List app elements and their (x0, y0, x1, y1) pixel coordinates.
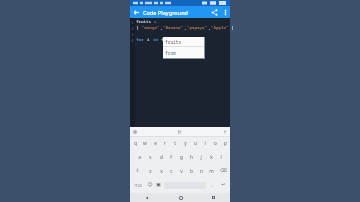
staticText: b (190, 168, 193, 175)
staticText: w (143, 140, 147, 147)
staticText: k (210, 154, 213, 161)
button[interactable]: m (206, 164, 216, 178)
button[interactable]: Back (130, 6, 142, 18)
staticText: 4 (131, 38, 134, 43)
button[interactable]: . (207, 178, 216, 192)
staticText: [ (136, 25, 142, 31)
staticText: ⌫ (220, 168, 227, 174)
staticText: x (160, 168, 163, 175)
button[interactable]: Home (164, 193, 197, 202)
staticText: ↵ (221, 182, 226, 188)
staticText: v (180, 168, 183, 175)
staticText: a (138, 154, 141, 161)
staticText: , (160, 25, 163, 31)
staticText: z (149, 168, 152, 175)
staticText: c (170, 168, 173, 175)
button[interactable]: s (145, 150, 156, 164)
button[interactable]: More options (220, 7, 230, 17)
staticText: ☺ (147, 182, 153, 188)
button[interactable]: Share (208, 6, 220, 18)
button[interactable]: a (134, 150, 145, 164)
button[interactable]: r (160, 137, 170, 150)
staticText: 1 (131, 20, 134, 25)
staticText: = (154, 19, 157, 25)
button[interactable]: l (216, 150, 226, 164)
staticText: , (184, 25, 187, 31)
staticText: y (184, 140, 187, 147)
button[interactable]: k (206, 150, 216, 164)
button[interactable]: Settings (130, 127, 140, 136)
staticText: s (149, 154, 152, 161)
staticText: Code Playground (143, 9, 189, 16)
staticText: r (164, 140, 166, 147)
staticText: o (214, 140, 217, 147)
button[interactable]: Voice input (220, 127, 230, 136)
staticText: 2 (131, 26, 134, 31)
button[interactable]: y (180, 137, 190, 150)
button[interactable]: z (145, 164, 156, 178)
button[interactable]: ☺ (145, 178, 154, 192)
button[interactable]: h (186, 150, 196, 164)
button[interactable]: ⌫ (216, 164, 230, 178)
staticText: p (224, 140, 227, 147)
staticText: "Banana" (163, 25, 184, 31)
button[interactable]: p (220, 137, 230, 150)
button[interactable]: fr (178, 129, 182, 135)
staticText: f (170, 154, 172, 161)
button[interactable]: Back (130, 193, 164, 202)
button[interactable]: b (186, 164, 196, 178)
staticText: q (134, 140, 137, 147)
button[interactable]: t (170, 137, 180, 150)
staticText: from (165, 50, 176, 56)
staticText: fr (161, 37, 167, 43)
staticText: m (209, 168, 214, 175)
staticText: "mango" (142, 25, 160, 31)
button[interactable]: g (176, 150, 186, 164)
staticText: for (136, 37, 147, 43)
staticText: , (208, 25, 211, 31)
staticText: g (180, 154, 183, 161)
button[interactable]: c (166, 164, 176, 178)
button[interactable]: fruits (163, 37, 204, 46)
button[interactable]: n (196, 164, 206, 178)
staticText: "Apple" (211, 25, 229, 31)
staticText: u (194, 140, 197, 147)
button[interactable]: u (190, 137, 200, 150)
button[interactable]: f (166, 150, 176, 164)
staticText: "papaya" (187, 25, 208, 31)
button[interactable]: x (156, 164, 166, 178)
staticText: fruits (136, 19, 154, 25)
button[interactable]: Recents (197, 193, 230, 202)
staticText: fruits (165, 39, 182, 45)
button[interactable]: ?123 (130, 178, 145, 192)
staticText: i (204, 140, 206, 147)
staticText: in (153, 37, 161, 43)
button[interactable]: i (200, 137, 210, 150)
button[interactable]: ⇧ (130, 164, 145, 178)
staticText: l (220, 154, 222, 161)
button[interactable]: j (196, 150, 206, 164)
button[interactable]: q (130, 137, 140, 150)
staticText: d (160, 154, 163, 161)
button[interactable]: w (140, 137, 150, 150)
button[interactable]: e (150, 137, 160, 150)
button[interactable]: o (210, 137, 220, 150)
button[interactable]: ↵ (216, 178, 230, 192)
staticText: . (211, 182, 213, 189)
staticText: ▣ (156, 182, 161, 188)
staticText: n (200, 168, 203, 175)
staticText: ⇧ (135, 168, 140, 174)
staticText: t (174, 140, 176, 147)
button[interactable]: v (176, 164, 186, 178)
button[interactable]: d (156, 150, 166, 164)
staticText: h (190, 154, 193, 161)
staticText: j (200, 154, 202, 161)
staticText: i (147, 37, 153, 43)
button[interactable]: ▣ (154, 178, 163, 192)
staticText: ?123 (134, 183, 142, 188)
staticText: 3 (131, 32, 134, 37)
staticText: e (154, 140, 157, 147)
button[interactable]: from (163, 47, 204, 58)
